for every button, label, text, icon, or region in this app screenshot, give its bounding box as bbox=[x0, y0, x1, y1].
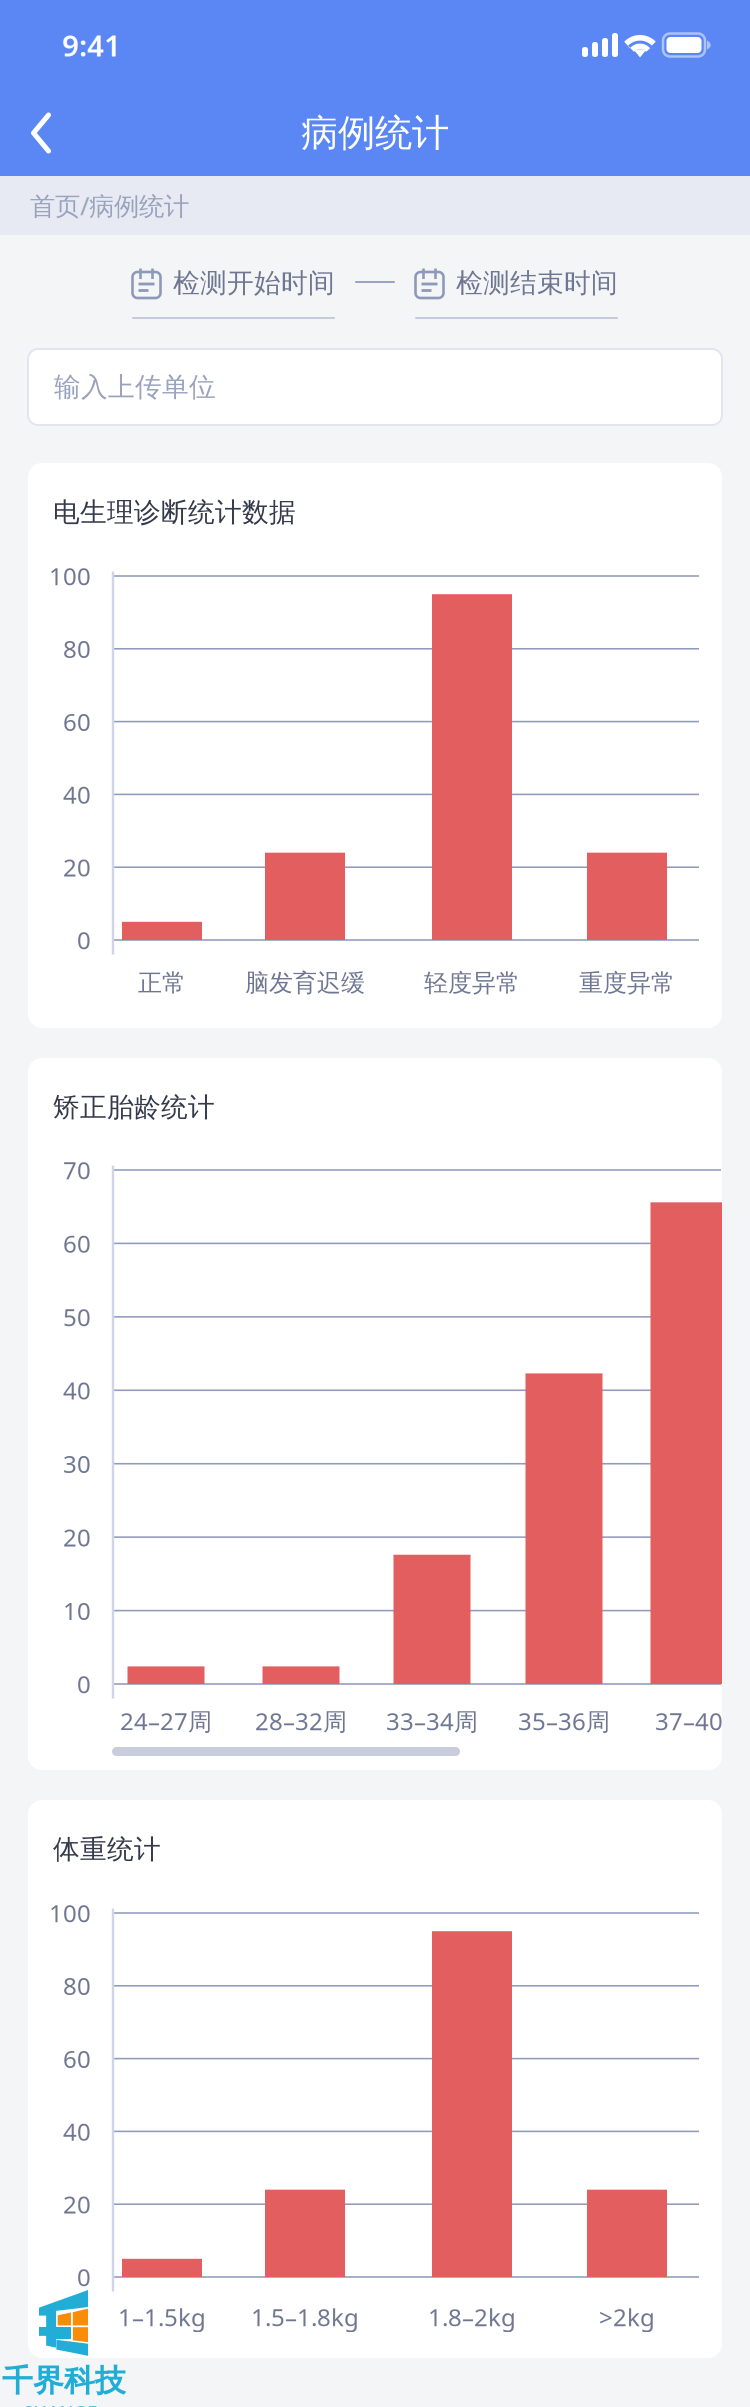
staticText: 脑发育迟缓 bbox=[245, 968, 365, 998]
staticText: 24–27周 bbox=[120, 1705, 212, 1737]
staticText: 检测结束时间 bbox=[456, 267, 618, 299]
staticText: 电生理诊断统计数据 bbox=[53, 496, 296, 529]
staticText: 28–32周 bbox=[255, 1705, 347, 1737]
staticText: 60 bbox=[63, 2043, 91, 2075]
staticText: >2kg bbox=[599, 2301, 655, 2333]
staticText: —CHANGE— bbox=[2, 2400, 116, 2407]
button[interactable]: 检测结束时间 bbox=[415, 267, 618, 319]
staticText: 33–34周 bbox=[386, 1705, 478, 1737]
staticText: 40 bbox=[63, 1374, 91, 1406]
staticText: 30 bbox=[63, 1448, 91, 1480]
staticText: 9:41 bbox=[62, 25, 121, 64]
staticText: 轻度异常 bbox=[424, 968, 520, 998]
staticText: 0 bbox=[77, 924, 91, 956]
staticText: 60 bbox=[63, 1227, 91, 1259]
staticText: 37–40 bbox=[655, 1705, 723, 1737]
staticText: 体重统计 bbox=[53, 1833, 161, 1866]
staticText: 正常 bbox=[138, 968, 186, 998]
button[interactable]: 检测开始时间 bbox=[132, 267, 335, 319]
staticText: 70 bbox=[63, 1154, 91, 1186]
staticText: 检测开始时间 bbox=[173, 267, 335, 299]
staticText: 1–1.5kg bbox=[118, 2301, 206, 2333]
staticText: 40 bbox=[63, 778, 91, 810]
staticText: 1.5–1.8kg bbox=[251, 2301, 359, 2333]
staticText: 50 bbox=[63, 1301, 91, 1333]
button[interactable]: Back bbox=[0, 90, 79, 176]
staticText: 35–36周 bbox=[518, 1705, 610, 1737]
staticText: 10 bbox=[63, 1595, 91, 1626]
staticText: 千界科技 bbox=[2, 2362, 126, 2400]
staticText: 20 bbox=[63, 2188, 91, 2220]
staticText: 0 bbox=[77, 1668, 91, 1700]
staticText: 输入上传单位 bbox=[54, 371, 216, 403]
staticText: 100 bbox=[49, 560, 91, 592]
staticText: 0 bbox=[77, 2261, 91, 2293]
staticText: 80 bbox=[63, 1970, 91, 2002]
staticText: 病例统计 bbox=[301, 110, 449, 156]
staticText: 矫正胎龄统计 bbox=[53, 1091, 215, 1124]
staticText: 1.8–2kg bbox=[428, 2301, 516, 2333]
staticText: 80 bbox=[63, 633, 91, 665]
staticText: 60 bbox=[63, 706, 91, 738]
staticText: 20 bbox=[63, 851, 91, 883]
staticText: 重度异常 bbox=[579, 968, 675, 998]
staticText: 100 bbox=[49, 1897, 91, 1929]
staticText: 首页/病例统计 bbox=[30, 189, 189, 222]
staticText: 20 bbox=[63, 1521, 91, 1553]
staticText: 40 bbox=[63, 2115, 91, 2147]
